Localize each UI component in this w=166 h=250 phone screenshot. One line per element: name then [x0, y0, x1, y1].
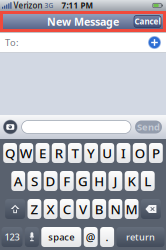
- button[interactable]: U: [100, 143, 114, 163]
- button[interactable]: return: [116, 227, 164, 247]
- button[interactable]: M: [125, 199, 138, 219]
- staticText: C: [63, 200, 71, 218]
- staticText: M: [126, 200, 138, 218]
- button[interactable]: O: [133, 143, 147, 163]
- staticText: Y: [87, 144, 95, 162]
- button[interactable]: Y: [84, 143, 98, 163]
- staticText: Send: [137, 121, 160, 133]
- staticText: R: [55, 144, 63, 162]
- button[interactable]: R: [52, 143, 66, 163]
- button[interactable]: C: [60, 199, 74, 219]
- staticText: return: [126, 231, 155, 243]
- button[interactable]: A: [11, 171, 25, 191]
- staticText: Z: [30, 200, 38, 218]
- staticText: Q: [5, 144, 15, 162]
- staticText: F: [63, 172, 70, 190]
- staticText: D: [46, 172, 56, 190]
- staticText: I: [121, 144, 126, 162]
- staticText: A: [14, 172, 23, 190]
- staticText: O: [135, 144, 145, 162]
- button[interactable]: [5, 199, 25, 219]
- staticText: Verizon: [13, 0, 42, 11]
- staticText: 7:11 PM: [61, 0, 93, 11]
- staticText: T: [71, 144, 78, 162]
- staticText: N: [110, 200, 120, 218]
- button[interactable]: Q: [3, 143, 17, 163]
- button[interactable]: Z: [27, 199, 41, 219]
- button[interactable]: [25, 227, 39, 247]
- button[interactable]: @: [84, 227, 98, 247]
- staticText: G: [78, 172, 88, 190]
- button[interactable]: Camera: [3, 120, 18, 134]
- button[interactable]: K: [125, 171, 138, 191]
- staticText: J: [113, 172, 117, 190]
- staticText: B: [95, 200, 104, 218]
- staticText: Cancel: [134, 16, 160, 27]
- staticText: 123: [4, 231, 19, 243]
- button[interactable]: N: [108, 199, 122, 219]
- button[interactable]: P: [149, 143, 163, 163]
- staticText: L: [144, 172, 151, 190]
- button[interactable]: G: [76, 171, 90, 191]
- staticText: X: [47, 200, 55, 218]
- staticText: .: [106, 230, 109, 244]
- staticText: P: [152, 144, 160, 162]
- button[interactable]: J: [108, 171, 122, 191]
- button[interactable]: B: [92, 199, 106, 219]
- button[interactable]: I: [117, 143, 130, 163]
- staticText: U: [102, 144, 112, 162]
- button[interactable]: L: [141, 171, 155, 191]
- staticText: 3G: [44, 1, 53, 10]
- button[interactable]: H: [92, 171, 106, 191]
- button[interactable]: space: [41, 227, 81, 247]
- staticText: V: [79, 200, 87, 218]
- button[interactable]: 123: [1, 227, 22, 247]
- button[interactable]: [141, 199, 161, 219]
- button[interactable]: V: [76, 199, 90, 219]
- button[interactable]: X: [44, 199, 57, 219]
- staticText: space: [48, 231, 74, 243]
- button[interactable]: .: [100, 227, 114, 247]
- staticText: @: [86, 230, 96, 244]
- button[interactable]: S: [27, 171, 41, 191]
- staticText: To:: [5, 36, 19, 49]
- button[interactable]: W: [19, 143, 33, 163]
- staticText: S: [31, 172, 38, 190]
- staticText: New Message: [47, 14, 119, 29]
- button[interactable]: T: [68, 143, 82, 163]
- button[interactable]: Send: [135, 120, 162, 133]
- staticText: E: [39, 144, 46, 162]
- button[interactable]: D: [44, 171, 57, 191]
- button[interactable]: Add contact: [148, 36, 161, 49]
- staticText: K: [128, 172, 136, 190]
- button[interactable]: E: [36, 143, 49, 163]
- button[interactable]: Cancel: [134, 15, 161, 27]
- button[interactable]: F: [60, 171, 74, 191]
- staticText: W: [20, 144, 33, 162]
- staticText: H: [94, 172, 104, 190]
